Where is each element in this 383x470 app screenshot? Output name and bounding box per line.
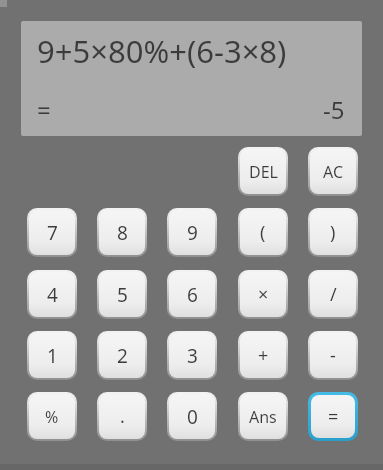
staticText: 3 <box>187 343 198 369</box>
staticText: - <box>330 343 336 368</box>
button[interactable]: % <box>27 392 77 441</box>
button[interactable]: 6 <box>167 270 217 319</box>
button[interactable]: DEL <box>238 147 288 196</box>
staticText: 5 <box>117 282 128 308</box>
staticText: 1 <box>47 343 58 369</box>
staticText: = <box>328 404 339 429</box>
staticText: 9 <box>187 220 198 246</box>
button[interactable]: Ans <box>238 392 288 441</box>
button[interactable]: 8 <box>97 208 147 257</box>
button[interactable]: = <box>308 392 358 441</box>
staticText: 8 <box>117 220 128 246</box>
button[interactable]: ( <box>238 208 288 257</box>
button[interactable]: 2 <box>97 331 147 380</box>
staticText: 7 <box>47 220 58 246</box>
button[interactable]: 4 <box>27 270 77 319</box>
staticText: AC <box>323 161 344 183</box>
staticText: = <box>37 93 51 126</box>
button[interactable]: / <box>308 270 358 319</box>
button[interactable]: × <box>238 270 288 319</box>
staticText: -5 <box>323 93 345 126</box>
staticText: × <box>258 282 269 307</box>
staticText: 6 <box>187 282 198 308</box>
staticText: . <box>120 404 125 429</box>
button[interactable]: 7 <box>27 208 77 257</box>
staticText: + <box>258 343 269 368</box>
button[interactable]: ) <box>308 208 358 257</box>
button[interactable]: + <box>238 331 288 380</box>
staticText: DEL <box>249 161 278 183</box>
button[interactable]: . <box>97 392 147 441</box>
button[interactable]: 0 <box>167 392 217 441</box>
staticText: % <box>45 406 59 428</box>
button[interactable]: AC <box>308 147 358 196</box>
staticText: 0 <box>187 404 198 430</box>
button[interactable]: - <box>308 331 358 380</box>
staticText: ) <box>330 220 336 245</box>
staticText: / <box>330 282 337 307</box>
button[interactable]: 1 <box>27 331 77 380</box>
button[interactable]: 5 <box>97 270 147 319</box>
staticText: 4 <box>47 282 58 308</box>
button[interactable]: 3 <box>167 331 217 380</box>
staticText: Ans <box>249 406 277 428</box>
button[interactable]: 9 <box>167 208 217 257</box>
staticText: ( <box>260 220 266 245</box>
staticText: 2 <box>117 343 128 369</box>
staticText: 9+5×80%+(6-3×8) <box>37 30 287 72</box>
